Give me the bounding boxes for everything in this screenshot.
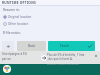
staticText: Resume in: bbox=[3, 8, 20, 12]
staticText: Back bbox=[28, 44, 36, 48]
staticText: plus que le livret A. bbox=[47, 57, 73, 61]
button[interactable]: Next bbox=[40, 54, 48, 62]
staticText: Original location bbox=[8, 15, 32, 19]
button[interactable]: Other location bbox=[0, 21, 100, 27]
staticText: Other location bbox=[8, 22, 29, 26]
staticText: Finish bbox=[60, 44, 69, 48]
button[interactable]: Back bbox=[17, 41, 46, 51]
staticText: If file exists: bbox=[3, 31, 21, 35]
button[interactable]: Open app bbox=[3, 65, 11, 73]
staticText: Plus de 5% d'intérêts, 1 litre bbox=[47, 53, 85, 57]
button[interactable]: Close ad bbox=[93, 53, 99, 59]
staticText: Epargne Conseil Calculatrice bbox=[47, 62, 79, 65]
button[interactable]: Finish bbox=[48, 41, 95, 51]
button[interactable]: Original location bbox=[0, 14, 100, 20]
button[interactable]: Back bbox=[2, 41, 14, 51]
staticText: par an bbox=[2, 57, 11, 61]
staticText: RUNTIME OPTIONS bbox=[2, 1, 36, 5]
staticText: Une épargne à 5% bbox=[2, 52, 27, 56]
button[interactable] bbox=[0, 51, 100, 64]
